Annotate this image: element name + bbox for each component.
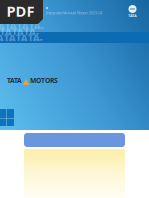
- staticText: TATA: [7, 76, 22, 85]
- staticText: TATATATATATATATA: [0, 17, 42, 59]
- button[interactable]: [0, 133, 149, 147]
- staticText: TATATATATATATATA: [0, 11, 38, 53]
- staticText: Integrated Annual Report 2023-24: [46, 10, 102, 15]
- staticText: PDF: [6, 1, 34, 21]
- staticText: MOTORS: [30, 76, 58, 85]
- staticText: TATA: [128, 13, 137, 18]
- staticText: TATATATATATATATA: [0, 5, 43, 47]
